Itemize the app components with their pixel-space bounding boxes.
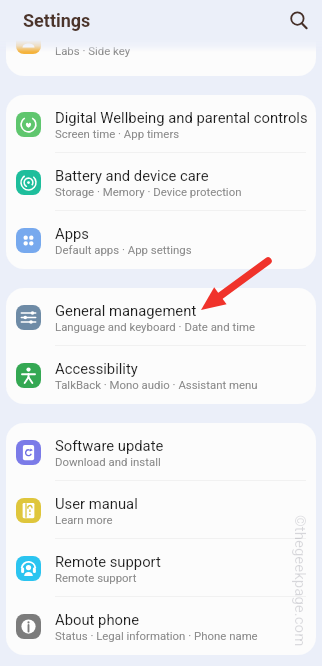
staticText: Software update: [55, 437, 164, 454]
button[interactable]: Battery and device care: [6, 153, 316, 211]
staticText: Remote support: [55, 553, 161, 570]
staticText: Remote support: [55, 571, 137, 584]
staticText: User manual: [55, 495, 138, 512]
staticText: ©thegeekpage.com: [291, 515, 309, 647]
button[interactable]: Accessibility: [6, 346, 316, 404]
staticText: Digital Wellbeing and parental controls: [55, 109, 308, 126]
staticText: Default apps · App settings: [55, 243, 192, 256]
staticText: Storage · Memory · Device protection: [55, 185, 242, 198]
button[interactable]: Apps: [6, 211, 316, 269]
staticText: General management: [55, 302, 197, 319]
staticText: Status · Legal information · Phone name: [55, 629, 258, 642]
staticText: Language and keyboard · Date and time: [55, 320, 255, 333]
button[interactable]: Remote support: [6, 539, 316, 597]
button[interactable]: User manual: [6, 481, 316, 539]
staticText: Labs · Side key: [55, 44, 131, 57]
staticText: Advanced features: [55, 30, 179, 43]
staticText: Accessibility: [55, 360, 138, 377]
button[interactable]: About phone: [6, 597, 316, 655]
staticText: Battery and device care: [55, 167, 209, 184]
staticText: Learn more: [55, 513, 113, 526]
button[interactable]: Digital Wellbeing and parental controls: [6, 95, 316, 153]
staticText: Screen time · App timers: [55, 127, 180, 140]
button[interactable]: Search: [283, 5, 315, 37]
staticText: Download and install: [55, 455, 161, 468]
staticText: About phone: [55, 611, 139, 628]
button[interactable]: Software update: [6, 423, 316, 481]
button[interactable]: General management: [6, 288, 316, 346]
staticText: Settings: [23, 10, 91, 31]
button[interactable]: Advanced features: [6, 30, 316, 76]
staticText: Apps: [55, 225, 89, 242]
staticText: TalkBack · Mono audio · Assistant menu: [55, 378, 258, 391]
